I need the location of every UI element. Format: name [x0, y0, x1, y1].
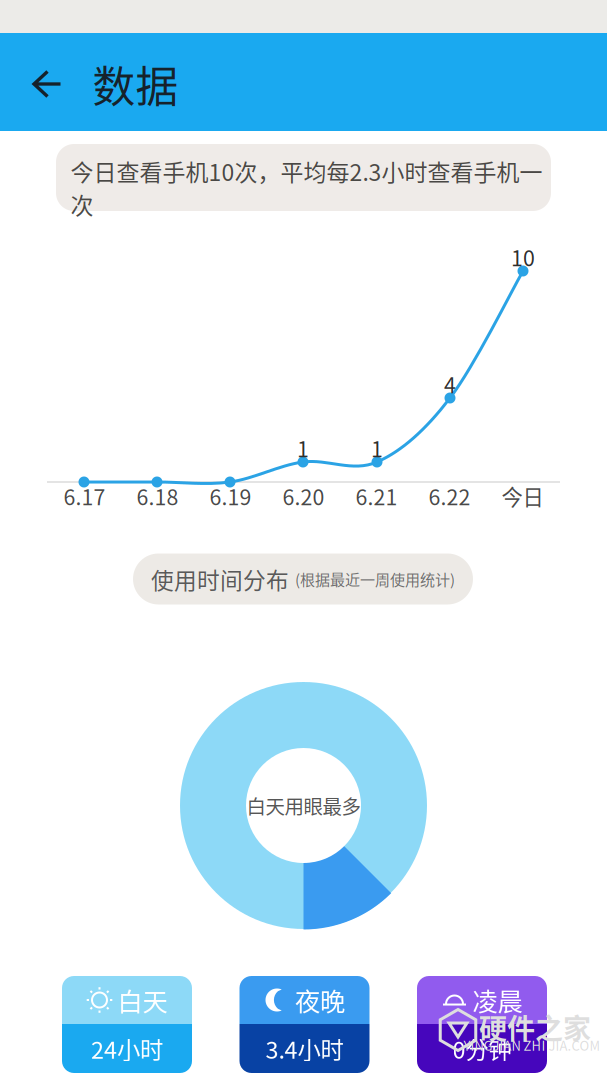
button[interactable]: 凌晨 — [417, 976, 547, 1073]
staticText: 10 — [511, 242, 535, 272]
staticText: 白天 — [117, 982, 167, 1018]
staticText: 夜晚 — [295, 982, 345, 1018]
staticText: 白天用眼最多 — [246, 791, 360, 820]
staticText: 6.18 — [136, 481, 178, 511]
staticText: 硬件之家 — [479, 1007, 591, 1047]
staticText: 0分钟 — [452, 1032, 511, 1065]
staticText: 数据 — [92, 53, 178, 115]
staticText: 今日 — [501, 481, 543, 511]
staticText: 6.19 — [209, 481, 251, 511]
button[interactable]: 夜晚 — [239, 976, 369, 1073]
staticText: 今日查看手机10次，平均每2.3小时查看手机一 — [70, 154, 542, 188]
staticText: 24小时 — [91, 1032, 163, 1065]
staticText: YINGJIAN ZHI JIA.COM — [463, 1035, 600, 1054]
staticText: 使用时间分布 — [151, 563, 289, 595]
staticText: 1 — [371, 433, 383, 463]
button[interactable]: 返回 — [14, 51, 81, 116]
staticText: 次 — [70, 188, 93, 221]
staticText: 凌晨 — [472, 982, 522, 1018]
staticText: 6.22 — [428, 481, 470, 511]
staticText: 4 — [444, 369, 456, 399]
staticText: 6.17 — [63, 481, 105, 511]
staticText: 6.21 — [355, 481, 397, 511]
staticText: 6.20 — [282, 481, 324, 511]
button[interactable]: 白天 — [62, 976, 192, 1073]
staticText: 1 — [297, 433, 309, 463]
staticText: (根据最近一周使用统计) — [295, 568, 455, 590]
staticText: 3.4小时 — [265, 1032, 343, 1065]
